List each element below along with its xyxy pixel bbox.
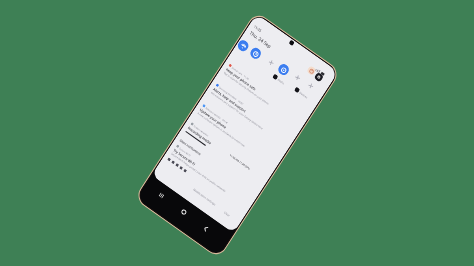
button[interactable]: Quick setting	[290, 69, 305, 85]
button[interactable]: Quick setting	[276, 62, 291, 77]
staticText: A new software update is available to in…	[197, 111, 246, 148]
button[interactable]: Secure Wi-Fi	[170, 144, 251, 207]
staticText: Device care	[231, 66, 243, 75]
staticText: Samsung Members	[219, 85, 238, 100]
staticText: Tap to scan for security threats on your…	[223, 71, 270, 106]
button[interactable]: Devices	[294, 86, 309, 100]
staticText: Screen recorder	[193, 124, 209, 137]
button[interactable]: Samsung Members	[210, 83, 290, 146]
staticText: Software update	[205, 106, 222, 119]
staticText: 11:38 AM 11:38 (SPL)	[229, 153, 252, 171]
button[interactable]: Device care	[223, 63, 303, 126]
staticText: Update your phone	[199, 107, 228, 130]
staticText: Keep your phone safe	[225, 67, 257, 92]
staticText: Thu, 24 Sep	[249, 30, 273, 49]
staticText: Devices	[298, 91, 309, 100]
button[interactable]: Home	[177, 204, 190, 218]
staticText: 10:02	[238, 99, 245, 105]
button[interactable]: Quick setting	[264, 54, 278, 69]
staticText: Try Secure Wi-Fi	[172, 147, 197, 167]
button[interactable]: Quick setting	[236, 38, 250, 53]
staticText: 11:35	[253, 24, 263, 33]
button[interactable]: Notification settings	[192, 188, 217, 207]
staticText: 09:14	[222, 118, 229, 124]
button[interactable]: Media	[272, 73, 286, 85]
staticText: 11:30	[243, 74, 251, 80]
staticText: Alerts, help and support	[212, 86, 248, 114]
staticText: Media	[277, 78, 285, 85]
staticText: Secure Wi-Fi helps protect your data on …	[170, 152, 227, 193]
staticText: Silent notifications	[179, 138, 202, 156]
button[interactable]: Quick setting	[303, 77, 318, 93]
button[interactable]: Recents	[155, 189, 168, 202]
button[interactable]: Software update	[197, 104, 277, 166]
staticText: Secure Wi-Fi	[179, 146, 192, 157]
button[interactable]: Screen recorder	[187, 122, 265, 181]
button[interactable]: Quick setting	[248, 46, 263, 61]
button[interactable]: Clear	[223, 210, 231, 218]
button[interactable]: Power off	[306, 65, 317, 76]
staticText: Get answers and support for your Galaxy …	[210, 91, 264, 131]
button[interactable]: Settings	[313, 71, 324, 83]
button[interactable]: Back	[199, 221, 212, 235]
staticText: Recording media	[187, 125, 213, 146]
